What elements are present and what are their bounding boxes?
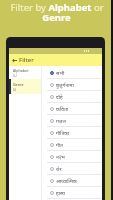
staticText: कविता	[56, 106, 69, 113]
button[interactable]: Back	[9, 55, 19, 65]
staticText: गीत	[56, 142, 63, 149]
button[interactable]: Genre	[9, 79, 41, 94]
button[interactable]: कविता	[42, 103, 102, 115]
staticText: आध्यात्मिक	[56, 178, 77, 185]
staticText: Alphabet	[13, 68, 29, 73]
button[interactable]: नज़्म	[42, 151, 102, 163]
button[interactable]: दोहे	[42, 91, 102, 103]
staticText: Filter by Alphabet or	[10, 1, 104, 14]
staticText: ग़ज़ल	[56, 118, 66, 125]
button[interactable]: गीतिका	[42, 127, 102, 139]
staticText: नज़्म	[56, 154, 65, 161]
button[interactable]: गीत	[42, 139, 102, 151]
staticText: All	[13, 88, 16, 92]
staticText: Filter	[19, 56, 34, 64]
staticText: सभी	[56, 70, 65, 77]
staticText: हास्य	[56, 190, 65, 197]
staticText: शेर	[56, 166, 62, 173]
staticText: दोहे	[56, 94, 63, 101]
button[interactable]: आध्यात्मिक	[42, 175, 102, 187]
button[interactable]: बुज़ुर्गनामा	[42, 79, 102, 91]
button[interactable]: सभी	[42, 67, 102, 79]
staticText: Genre	[13, 82, 24, 87]
staticText: बुज़ुर्गनामा	[56, 82, 74, 89]
button[interactable]: हास्य	[42, 187, 102, 199]
staticText: Genre	[42, 11, 71, 24]
button[interactable]: शेर	[42, 163, 102, 175]
button[interactable]: ग़ज़ल	[42, 115, 102, 127]
staticText: A-Z	[13, 74, 17, 78]
button[interactable]: Alphabet	[9, 66, 41, 79]
staticText: गीतिका	[56, 130, 70, 137]
